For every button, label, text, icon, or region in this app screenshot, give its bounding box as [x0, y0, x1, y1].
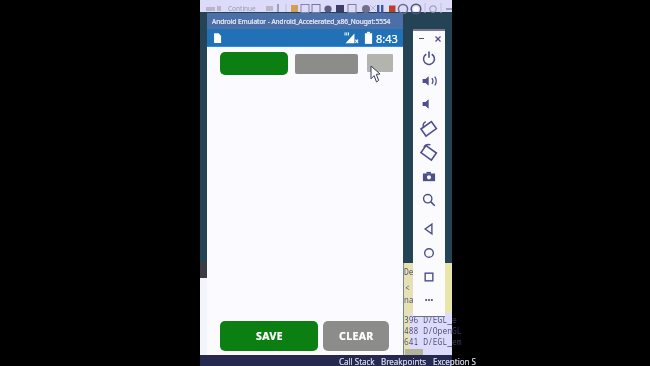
staticText: nat	[404, 294, 414, 305]
staticText: Continue	[228, 4, 256, 13]
button[interactable]: Secondary action	[295, 54, 358, 74]
button[interactable]: Emulator control	[421, 269, 437, 285]
button[interactable]: Emulator control	[421, 144, 437, 160]
button[interactable]: Primary action	[220, 52, 288, 75]
button[interactable]: CLEAR	[323, 321, 389, 351]
button[interactable]: Emulator control	[421, 221, 437, 237]
button[interactable]: Emulator control	[421, 169, 437, 185]
button[interactable]: Emulator control	[421, 245, 437, 261]
button[interactable]: Exception S	[433, 356, 476, 366]
staticText: 396 D/EGL_e	[404, 314, 457, 325]
staticText: 8:43	[376, 31, 398, 46]
button[interactable]: Call Stack	[339, 356, 375, 366]
staticText: <	[405, 282, 410, 293]
staticText: Det	[404, 266, 414, 277]
button[interactable]: Emulator control	[421, 292, 437, 308]
staticText: 488 D/OpenGL	[404, 325, 462, 336]
button[interactable]: Tertiary action	[367, 54, 393, 72]
staticText: 641 D/EGL_em	[404, 336, 462, 347]
staticText: Android Emulator - Android_Accelerated_x…	[212, 17, 391, 26]
button[interactable]: SAVE	[220, 321, 318, 351]
button[interactable]: Emulator control	[421, 73, 437, 89]
staticText: CLEAR	[339, 329, 374, 343]
button[interactable]: Emulator control	[421, 192, 437, 208]
button[interactable]: Emulator control	[421, 96, 437, 112]
button[interactable]: Emulator control	[421, 120, 437, 136]
button[interactable]: Breakpoints	[381, 356, 427, 366]
staticText: SAVE	[256, 329, 283, 343]
button[interactable]: Emulator control	[421, 50, 437, 66]
